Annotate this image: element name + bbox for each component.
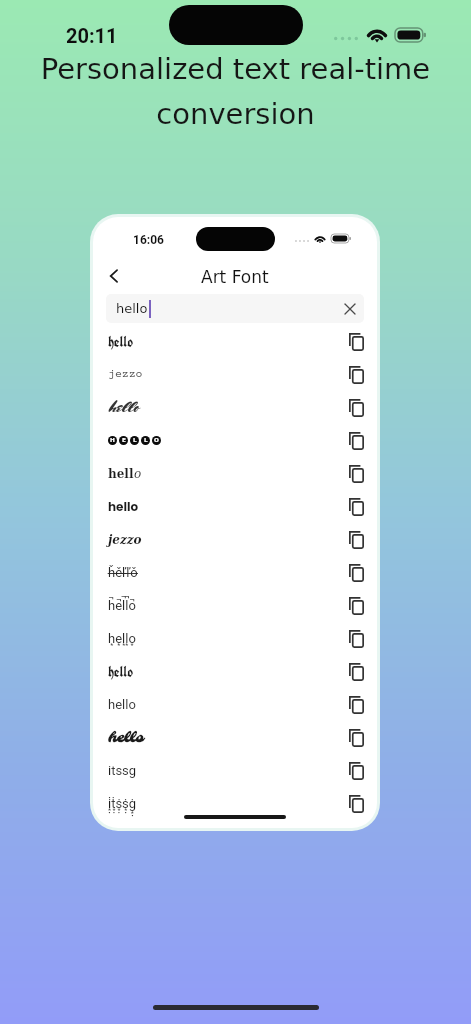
button[interactable]: Copy xyxy=(344,693,368,717)
staticText: hell xyxy=(108,467,134,481)
staticText: H xyxy=(110,437,115,444)
button[interactable]: Back xyxy=(100,262,128,290)
button[interactable]: jezzo xyxy=(93,523,377,556)
button[interactable]: hello xyxy=(93,391,377,424)
staticText: h͙e͙l͙l͙o͙ xyxy=(108,631,136,646)
staticText: L xyxy=(133,437,137,444)
button[interactable]: Copy xyxy=(344,726,368,750)
button[interactable]: hello xyxy=(93,721,377,754)
staticText: hello xyxy=(116,301,148,316)
button[interactable]: hello xyxy=(93,688,377,721)
staticText: 16:06 xyxy=(133,233,164,247)
button[interactable]: Copy xyxy=(344,429,368,453)
staticText: o xyxy=(134,467,142,481)
staticText: i͙̣̇ṫ͙̣ṡ͙̣ṡ͙̣ġ͙̣ xyxy=(108,796,137,811)
button[interactable]: hello xyxy=(93,655,377,688)
button[interactable]: Copy xyxy=(344,495,368,519)
staticText: hello xyxy=(108,697,136,712)
button[interactable]: ȟ̶ě̶ľ̶ľ̶ǒ̶ xyxy=(93,556,377,589)
button[interactable]: Clear text xyxy=(341,300,359,318)
button[interactable]: hello xyxy=(106,294,364,323)
button[interactable]: Copy xyxy=(344,396,368,420)
staticText: h̚e̚l̚l̚o̚ xyxy=(108,598,136,613)
button[interactable]: Copy xyxy=(344,462,368,486)
button[interactable]: Copy xyxy=(344,594,368,618)
staticText: jezzo xyxy=(108,533,142,547)
button[interactable]: itssg xyxy=(93,754,377,787)
button[interactable]: hello xyxy=(93,490,377,523)
staticText: E xyxy=(122,437,126,444)
button[interactable]: Copy xyxy=(344,561,368,585)
staticText: hello xyxy=(108,333,134,351)
button[interactable]: Copy xyxy=(344,660,368,684)
staticText: Art Font xyxy=(201,267,269,287)
button[interactable]: Copy xyxy=(344,792,368,816)
staticText: ȟ̶ě̶ľ̶ľ̶ǒ̶ xyxy=(108,565,138,580)
staticText: O xyxy=(154,437,159,444)
button[interactable]: Copy xyxy=(344,363,368,387)
button[interactable]: Copy xyxy=(344,528,368,552)
staticText: hello xyxy=(108,663,134,681)
button[interactable]: h͙e͙l͙l͙o͙ xyxy=(93,622,377,655)
button[interactable]: jezzo xyxy=(93,358,377,391)
staticText: L xyxy=(144,437,148,444)
staticText: hello xyxy=(108,397,139,418)
button[interactable]: i͙̣̇ṫ͙̣ṡ͙̣ṡ͙̣ġ͙̣ xyxy=(93,787,377,820)
button[interactable]: hello xyxy=(93,325,377,358)
staticText: hello xyxy=(108,728,144,747)
staticText: itssg xyxy=(108,763,137,778)
staticText: jezzo xyxy=(108,368,143,381)
staticText: 20:11 xyxy=(66,24,118,47)
button[interactable]: h̚e̚l̚l̚o̚ xyxy=(93,589,377,622)
button[interactable]: H xyxy=(93,424,377,457)
staticText: hello xyxy=(108,498,139,515)
staticText: Personalized text real-time conversion xyxy=(28,52,443,131)
button[interactable]: Copy xyxy=(344,627,368,651)
button[interactable]: hell xyxy=(93,457,377,490)
button[interactable]: Copy xyxy=(344,759,368,783)
button[interactable]: Copy xyxy=(344,330,368,354)
